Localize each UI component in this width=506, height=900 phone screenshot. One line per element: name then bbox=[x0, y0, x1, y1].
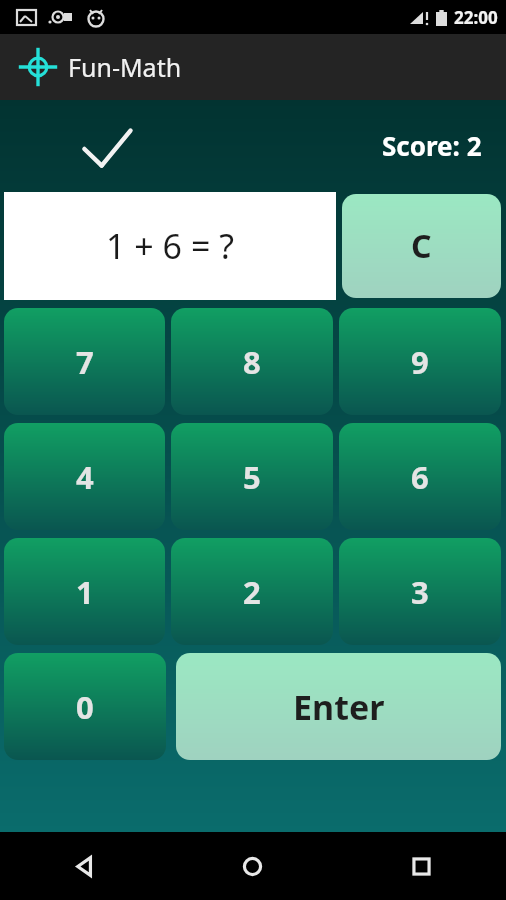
staticText: 6 bbox=[411, 456, 429, 498]
staticText: 8 bbox=[243, 341, 261, 383]
button[interactable]: C bbox=[342, 194, 501, 298]
button[interactable]: Home bbox=[168, 832, 337, 900]
button[interactable]: Recent apps bbox=[337, 832, 506, 900]
button[interactable]: Enter bbox=[176, 653, 501, 760]
button[interactable]: 1 + 6 = ? bbox=[4, 192, 336, 300]
staticText: 22:00 bbox=[454, 6, 498, 29]
button[interactable]: 3 bbox=[339, 538, 501, 645]
button[interactable]: 1 bbox=[4, 538, 165, 645]
button[interactable]: 6 bbox=[339, 423, 501, 530]
button[interactable]: 7 bbox=[4, 308, 165, 415]
button[interactable]: 8 bbox=[171, 308, 333, 415]
button[interactable]: Back bbox=[0, 832, 168, 900]
staticText: 1 bbox=[76, 571, 94, 613]
button[interactable]: 2 bbox=[171, 538, 333, 645]
button[interactable]: 5 bbox=[171, 423, 333, 530]
staticText: 4 bbox=[76, 456, 94, 498]
staticText: 0 bbox=[76, 686, 94, 728]
staticText: Enter bbox=[293, 684, 385, 730]
staticText: 3 bbox=[411, 571, 429, 613]
other: Correct bbox=[78, 126, 142, 172]
staticText: 9 bbox=[411, 341, 429, 383]
staticText: C bbox=[411, 224, 432, 268]
staticText: 5 bbox=[243, 456, 261, 498]
staticText: 7 bbox=[76, 341, 94, 383]
button[interactable]: 0 bbox=[4, 653, 166, 760]
staticText: 2 bbox=[243, 571, 261, 613]
staticText: 1 + 6 = ? bbox=[106, 223, 234, 269]
button[interactable]: 4 bbox=[4, 423, 165, 530]
button[interactable]: 9 bbox=[339, 308, 501, 415]
staticText: Fun-Math bbox=[68, 50, 182, 84]
staticText: Score: 2 bbox=[382, 128, 482, 163]
